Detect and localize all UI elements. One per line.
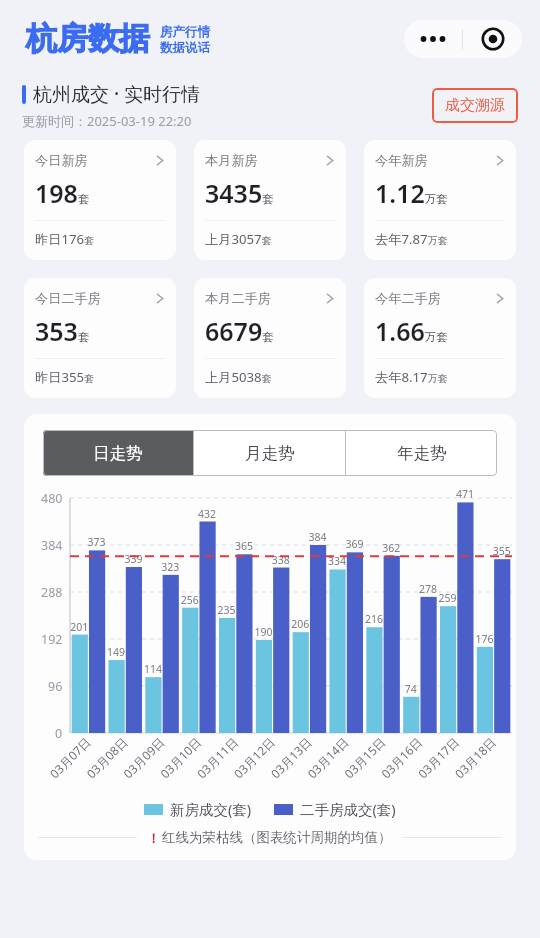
staticText: 上月3057套 (205, 230, 272, 248)
button[interactable]: 本月新房 (194, 140, 346, 260)
staticText: 上月5038套 (205, 368, 272, 386)
staticText: ！ (147, 830, 160, 846)
staticText: 月走势 (245, 443, 295, 464)
button[interactable]: 日走势 (43, 430, 193, 476)
button[interactable]: 今年二手房 (364, 278, 516, 398)
staticText: 杭房数据 (26, 19, 150, 58)
staticText: 年走势 (397, 443, 447, 464)
button[interactable]: Target (463, 20, 522, 58)
staticText: 昨日176套 (35, 230, 95, 248)
staticText: 数据说话 (160, 40, 210, 56)
staticText: 房产行情 (160, 24, 210, 40)
staticText: 今日二手房 (35, 290, 101, 307)
button[interactable]: 本月二手房 (194, 278, 346, 398)
staticText: 更新时间：2025-03-19 22:20 (22, 112, 192, 130)
staticText: 日走势 (93, 443, 143, 464)
button[interactable]: 年走势 (346, 430, 497, 476)
staticText: 本月二手房 (205, 290, 271, 307)
staticText: 新房成交(套) (170, 799, 252, 819)
staticText: 3435套 (205, 176, 274, 210)
staticText: 198套 (35, 176, 90, 210)
staticText: 353套 (35, 314, 90, 348)
button[interactable]: More (404, 20, 462, 58)
staticText: 今日新房 (35, 152, 88, 169)
staticText: 成交溯源 (445, 96, 505, 115)
button[interactable]: 今日二手房 (24, 278, 176, 398)
button[interactable]: 二手房成交(套) (274, 799, 396, 819)
button[interactable]: 今年新房 (364, 140, 516, 260)
staticText: 去年7.87万套 (375, 230, 448, 248)
staticText: 今年新房 (375, 152, 428, 169)
button[interactable]: 今日新房 (24, 140, 176, 260)
button[interactable]: 成交溯源 (432, 88, 518, 123)
staticText: 去年8.17万套 (375, 368, 448, 386)
staticText: 昨日355套 (35, 368, 95, 386)
staticText: 1.12万套 (375, 176, 448, 210)
staticText: 本月新房 (205, 152, 258, 169)
staticText: 红线为荣枯线（图表统计周期的均值） (162, 829, 392, 846)
staticText: 6679套 (205, 314, 274, 348)
staticText: 二手房成交(套) (300, 799, 396, 819)
button[interactable]: 月走势 (194, 430, 345, 476)
staticText: 今年二手房 (375, 290, 441, 307)
staticText: 1.66万套 (375, 314, 448, 348)
staticText: 杭州成交 · 实时行情 (33, 81, 201, 107)
button[interactable]: 新房成交(套) (144, 799, 252, 819)
